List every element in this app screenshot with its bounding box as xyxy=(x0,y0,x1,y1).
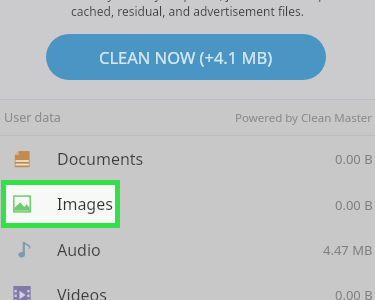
staticText: Videos xyxy=(57,284,107,300)
button[interactable]: Images xyxy=(0,182,375,228)
staticText: Powered by Clean Master xyxy=(235,110,373,126)
button[interactable]: Audio xyxy=(0,227,375,273)
button[interactable]: Videos xyxy=(0,272,375,300)
other: Audio xyxy=(13,241,31,259)
staticText: 0.00 B xyxy=(335,196,373,214)
staticText: Documents xyxy=(57,148,144,170)
staticText: cached, residual, and advertisement file… xyxy=(71,3,304,19)
other: Videos xyxy=(13,286,31,300)
staticText: User data xyxy=(4,109,61,126)
other: Documents xyxy=(13,150,31,168)
button[interactable]: Documents xyxy=(0,136,375,182)
staticText: Images xyxy=(57,193,113,215)
staticText: CLEAN NOW (+4.1 MB) xyxy=(99,46,273,68)
button[interactable]: Images xyxy=(6,185,115,223)
staticText: Audio xyxy=(57,239,101,261)
staticText: each time you use your phone, junk files… xyxy=(0,0,375,2)
staticText: 0.00 B xyxy=(335,150,373,168)
staticText: 4.47 MB xyxy=(323,241,373,259)
button[interactable]: CLEAN NOW (+4.1 MB) xyxy=(46,34,326,80)
other: Images xyxy=(13,195,31,213)
staticText: Images xyxy=(57,194,113,216)
staticText: 0.00 B xyxy=(335,286,373,300)
other: Images xyxy=(13,196,31,214)
